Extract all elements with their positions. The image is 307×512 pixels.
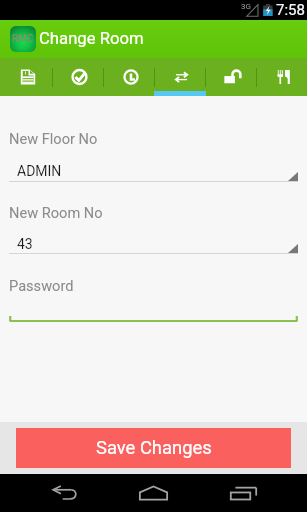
button[interactable]: Food	[256, 58, 307, 96]
staticText: Save Changes	[96, 437, 212, 459]
button[interactable]: Save Changes	[16, 428, 291, 468]
staticText: RMC	[12, 33, 34, 45]
staticText: Password	[9, 277, 74, 294]
button[interactable]: 43	[9, 236, 298, 254]
button[interactable]: Approved	[52, 58, 103, 96]
button[interactable]: Change Room	[154, 58, 205, 96]
button[interactable]: ADMIN	[9, 163, 298, 182]
button[interactable]: Documents	[0, 58, 52, 96]
staticText: Change Room	[39, 29, 144, 49]
staticText: ADMIN	[17, 163, 62, 179]
staticText: 3G	[241, 2, 251, 11]
staticText: New Room No	[9, 204, 103, 221]
button[interactable]: Time	[103, 58, 154, 96]
staticText: 7:58	[276, 1, 305, 19]
button[interactable]: Home	[102, 474, 205, 512]
staticText: 43	[17, 236, 33, 252]
button[interactable]: App icon	[10, 26, 36, 52]
button[interactable]: Unlock	[205, 58, 256, 96]
staticText: New Floor No	[9, 130, 98, 147]
button[interactable]: Password	[9, 313, 298, 322]
button[interactable]: Back	[0, 474, 102, 512]
button[interactable]: Recents	[205, 474, 307, 512]
